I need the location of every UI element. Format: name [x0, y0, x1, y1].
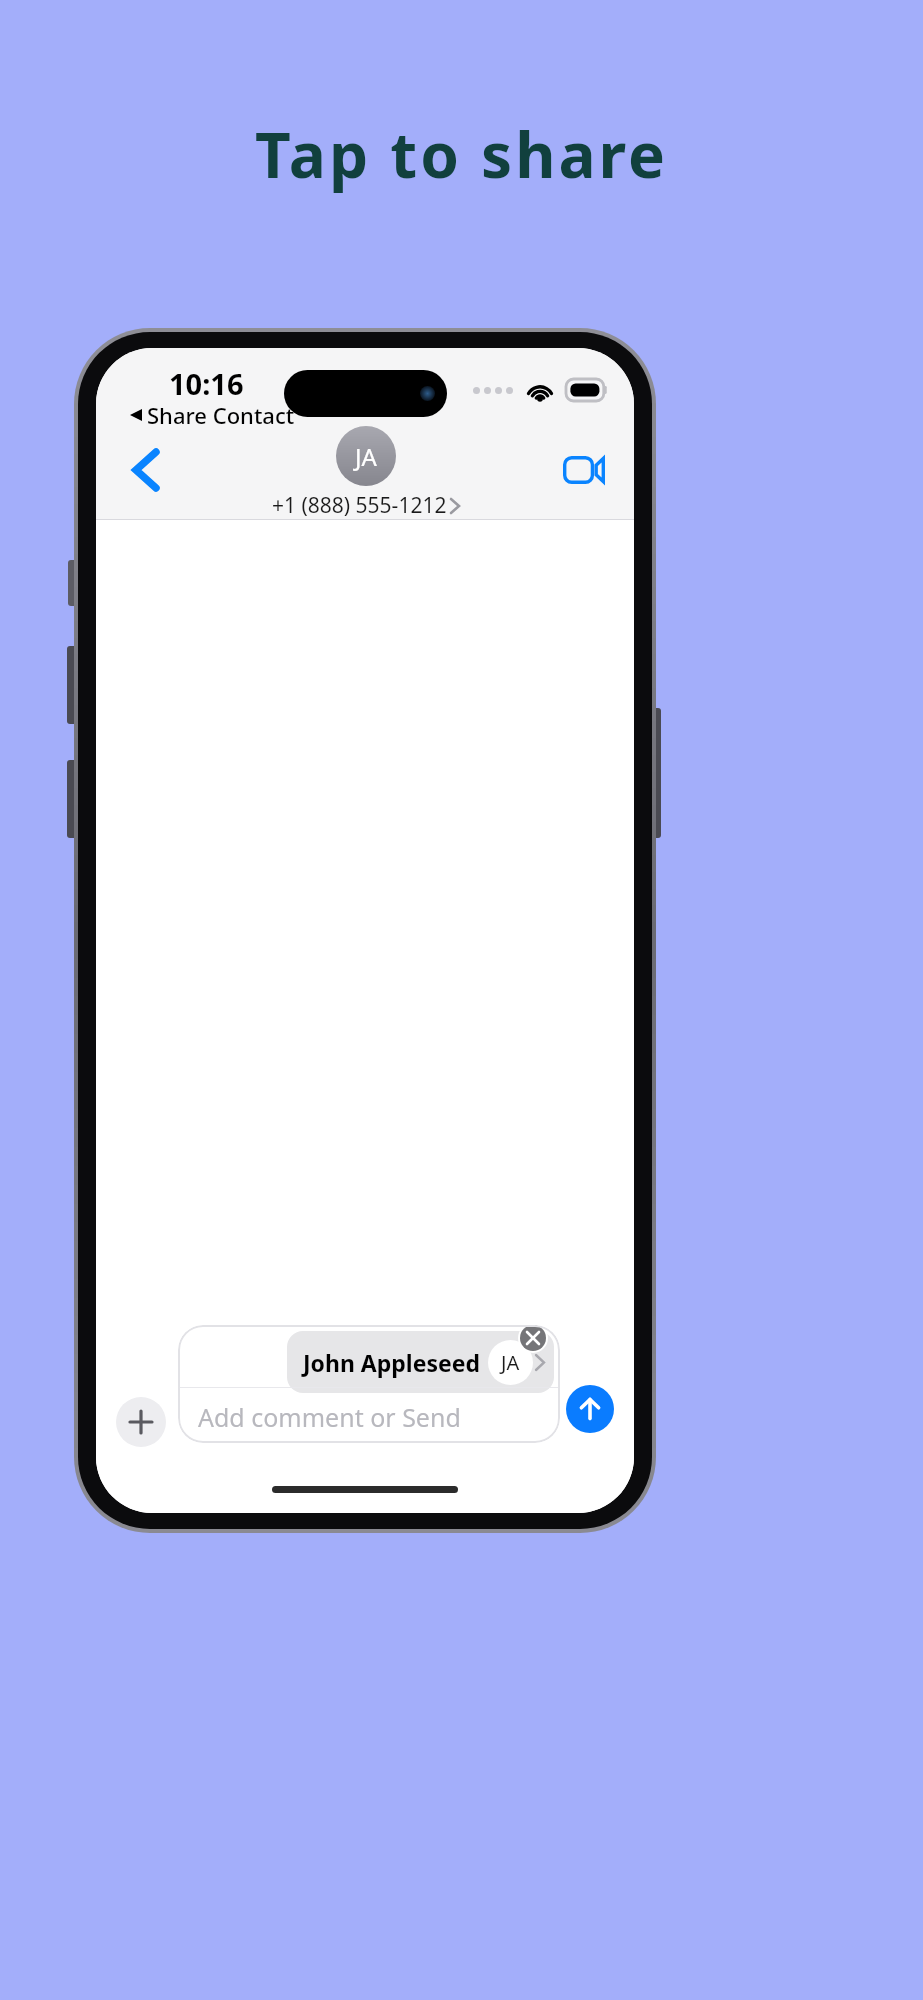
- button[interactable]: Remove attachment: [520, 1325, 546, 1351]
- button[interactable]: FaceTime video call: [558, 444, 610, 496]
- button[interactable]: John Appleseed: [178, 1325, 560, 1443]
- staticText: 10:16: [169, 364, 244, 403]
- button[interactable]: Send: [566, 1385, 614, 1433]
- button[interactable]: Add attachment: [116, 1397, 166, 1447]
- staticText: Add comment or Send: [198, 1400, 461, 1434]
- button[interactable]: John Appleseed: [287, 1331, 554, 1393]
- staticText: Tap to share: [255, 112, 669, 196]
- staticText: +1 (888) 555-1212: [272, 491, 447, 520]
- staticText: JA: [355, 440, 377, 473]
- staticText: Share Contact: [147, 400, 295, 430]
- button[interactable]: Share Contact: [130, 400, 295, 430]
- staticText: John Appleseed: [303, 1347, 480, 1378]
- staticText: JA: [501, 1349, 520, 1376]
- button[interactable]: JA: [272, 426, 459, 520]
- button[interactable]: Back: [120, 444, 172, 496]
